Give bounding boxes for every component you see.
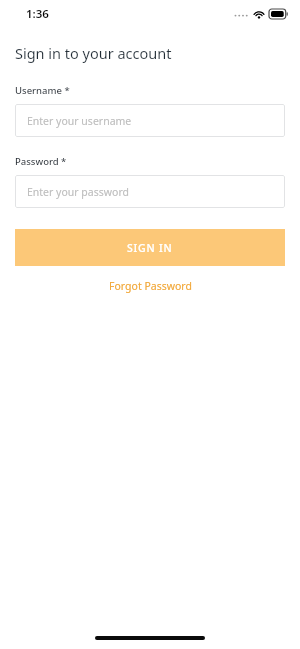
staticText: Enter your password (27, 185, 129, 199)
staticText: SIGN IN (127, 241, 173, 255)
staticText: Password * (15, 155, 67, 168)
staticText: 1:36 (26, 6, 49, 22)
staticText: Enter your username (27, 114, 132, 128)
button[interactable]: Enter your password (15, 175, 285, 208)
button[interactable]: Forgot Password (0, 274, 300, 298)
staticText: Forgot Password (109, 279, 192, 293)
button[interactable]: Enter your username (15, 104, 285, 137)
staticText: Sign in to your account (15, 43, 172, 63)
button[interactable]: SIGN IN (15, 229, 285, 266)
staticText: Username * (15, 84, 70, 97)
